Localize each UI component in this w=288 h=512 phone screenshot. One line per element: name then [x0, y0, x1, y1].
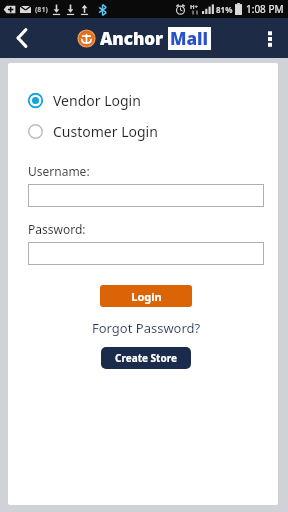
button[interactable]: Login: [100, 285, 192, 307]
staticText: Username:: [28, 163, 90, 179]
button[interactable]: Back: [0, 18, 44, 58]
staticText: H+: [190, 3, 199, 11]
button[interactable]: Vendor Login: [28, 91, 264, 110]
staticText: Customer Login: [53, 122, 158, 141]
staticText: Forgot Password?: [92, 319, 201, 337]
button[interactable]: More options: [252, 18, 288, 58]
staticText: (81): [35, 5, 48, 15]
staticText: Anchor: [100, 27, 164, 50]
staticText: Mall: [170, 27, 209, 50]
staticText: Password:: [28, 221, 86, 237]
button[interactable]: Forgot Password?: [86, 317, 207, 339]
staticText: 1:08 PM: [246, 2, 284, 16]
button[interactable]: Customer Login: [28, 122, 264, 141]
staticText: Create Store: [115, 351, 177, 365]
button[interactable]: Text input: [28, 184, 264, 207]
staticText: Vendor Login: [53, 91, 141, 110]
button[interactable]: Create Store: [101, 347, 191, 369]
staticText: 81%: [216, 4, 233, 15]
button[interactable]: Text input: [28, 242, 264, 265]
staticText: Login: [131, 289, 162, 304]
